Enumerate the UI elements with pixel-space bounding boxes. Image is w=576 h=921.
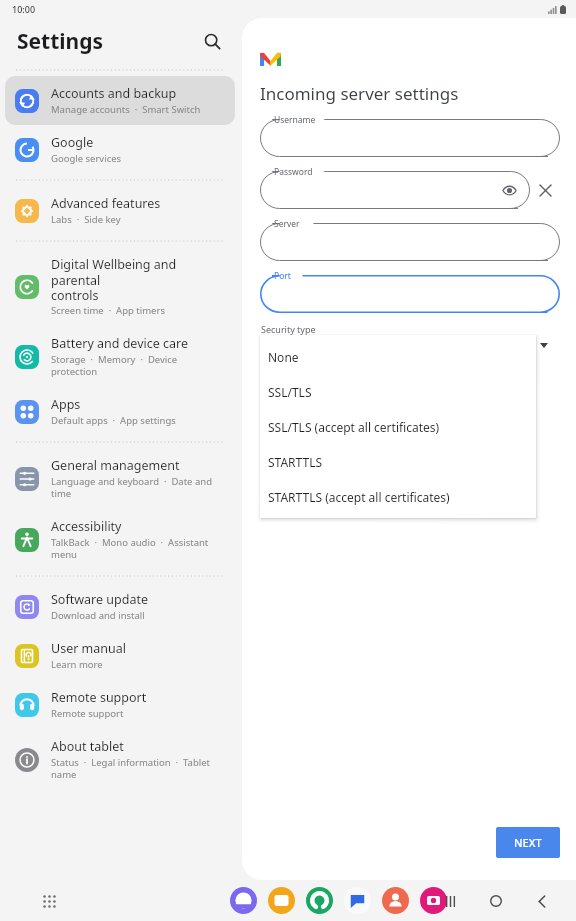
staticText: Google services (51, 152, 122, 165)
staticText: TalkBack · Mono audio · Assistant menu (51, 536, 209, 561)
button[interactable]: SSL/TLS (260, 374, 536, 409)
staticText: Apps (51, 396, 81, 413)
staticText: Remote support (51, 689, 147, 706)
staticText: None (268, 349, 299, 365)
staticText: Username (274, 114, 316, 126)
button[interactable]: Search (196, 25, 228, 57)
staticText: About tablet (51, 738, 124, 755)
button[interactable]: SSL/TLS (accept all certificates) (260, 409, 536, 444)
staticText: Accessibility (51, 518, 122, 535)
button[interactable]: General management (5, 448, 235, 509)
button[interactable]: NEXT (496, 827, 560, 858)
staticText: STARTTLS (268, 454, 323, 470)
staticText: Google (51, 134, 94, 151)
staticText: SSL/TLS (268, 384, 312, 400)
button[interactable]: User manual (5, 631, 235, 680)
button[interactable]: Recents (438, 889, 462, 913)
button[interactable]: My Files (268, 887, 295, 914)
staticText: Labs · Side key (51, 213, 121, 226)
staticText: Manage accounts · Smart Switch (51, 103, 201, 116)
staticText: General management (51, 457, 180, 474)
button[interactable]: Expand (536, 337, 552, 353)
button[interactable]: Google (5, 125, 235, 174)
staticText: Screen time · App timers (51, 304, 165, 317)
button[interactable]: Messages (344, 887, 371, 914)
button[interactable]: Internet (230, 887, 257, 914)
button[interactable]: Battery and device care (5, 326, 235, 387)
button[interactable]: Accessibility (5, 509, 235, 570)
button[interactable]: Clear (530, 175, 560, 205)
staticText: Accounts and backup (51, 85, 177, 102)
staticText: Settings (17, 27, 104, 56)
button[interactable]: Remote support (5, 680, 235, 729)
button[interactable]: STARTTLS (accept all certificates) (260, 479, 536, 514)
button[interactable]: Camera (420, 887, 447, 914)
button[interactable]: Phone (306, 887, 333, 914)
staticText: STARTTLS (accept all certificates) (268, 489, 450, 505)
button[interactable]: Accounts and backup (5, 76, 235, 125)
staticText: Server (274, 218, 300, 230)
button[interactable]: Back (530, 889, 554, 913)
staticText: User manual (51, 640, 126, 657)
staticText: 10:00 (12, 3, 36, 15)
button[interactable]: Apps (5, 387, 235, 436)
button[interactable]: Home (484, 889, 508, 913)
staticText: Digital Wellbeing and parental controls (51, 256, 225, 303)
button[interactable]: Port (260, 275, 560, 313)
button[interactable]: Server (260, 223, 560, 261)
button[interactable]: Apps (36, 888, 62, 914)
staticText: Advanced features (51, 195, 161, 212)
button[interactable]: None (260, 339, 536, 374)
staticText: Password (274, 166, 313, 178)
staticText: Remote support (51, 707, 124, 720)
button[interactable]: Show password (498, 179, 520, 201)
button[interactable]: Password (260, 171, 530, 209)
button[interactable]: Digital Wellbeing and parental controls (5, 247, 235, 326)
button[interactable]: Contacts (382, 887, 409, 914)
button[interactable]: Username (260, 119, 560, 157)
button[interactable]: About tablet (5, 729, 235, 790)
staticText: SSL/TLS (accept all certificates) (268, 419, 440, 435)
staticText: Incoming server settings (260, 82, 459, 105)
staticText: Status · Legal information · Tablet name (51, 756, 211, 781)
button[interactable]: Software update (5, 582, 235, 631)
staticText: Security type (261, 323, 316, 335)
button[interactable]: Advanced features (5, 186, 235, 235)
staticText: NEXT (514, 835, 542, 850)
staticText: Port (274, 270, 291, 282)
staticText: Language and keyboard · Date and time (51, 475, 212, 500)
staticText: Default apps · App settings (51, 414, 176, 427)
staticText: Battery and device care (51, 335, 189, 352)
staticText: Software update (51, 591, 148, 608)
staticText: Learn more (51, 658, 103, 671)
staticText: Download and install (51, 609, 145, 622)
button[interactable]: STARTTLS (260, 444, 536, 479)
staticText: Storage · Memory · Device protection (51, 353, 225, 378)
